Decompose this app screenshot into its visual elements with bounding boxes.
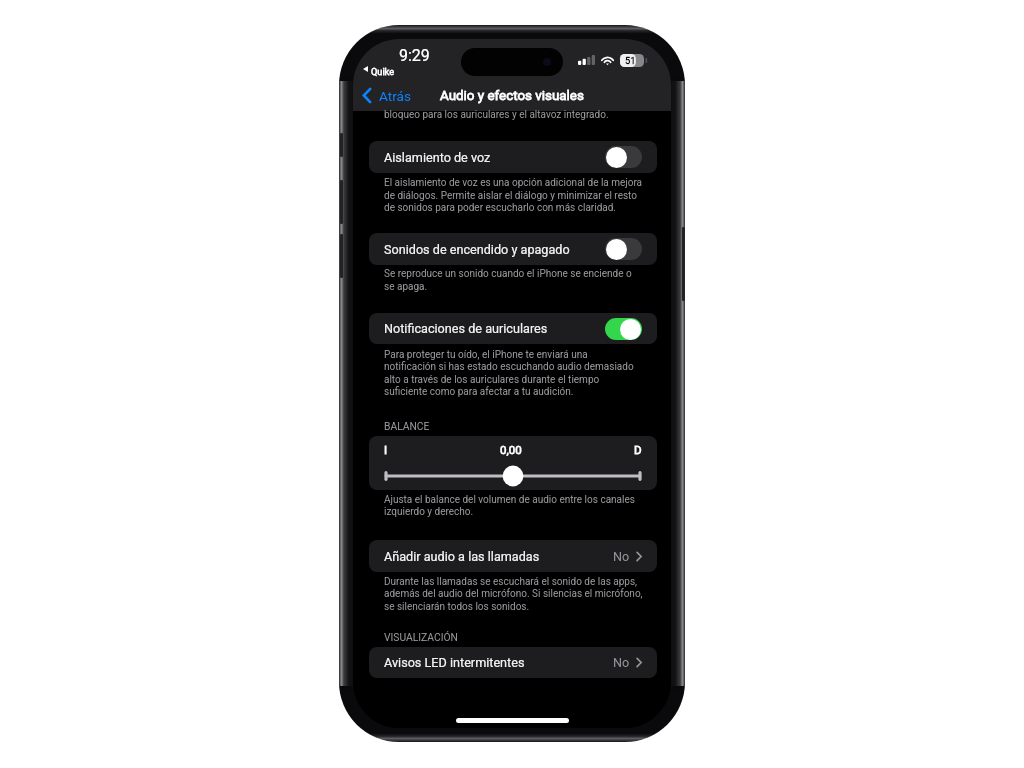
- staticText: VISUALIZACIÓN: [384, 631, 458, 643]
- staticText: Quike: [371, 66, 395, 77]
- staticText: Notificaciones de auriculares: [384, 321, 548, 336]
- staticText: suficiente como para afectar a tu audici…: [384, 386, 574, 398]
- staticText: bloqueo para los auriculares y el altavo…: [384, 109, 609, 121]
- staticText: Atrás: [379, 88, 411, 104]
- staticText: D: [634, 443, 642, 456]
- staticText: Aislamiento de voz: [384, 150, 491, 165]
- staticText: además del audio del micrófono. Si silen…: [384, 588, 643, 600]
- staticText: El aislamiento de voz es una opción adic…: [384, 177, 643, 189]
- button[interactable]: Aislamiento de voz: [369, 141, 657, 173]
- button[interactable]: Atrás: [356, 83, 420, 108]
- staticText: notificación si has estado escuchando au…: [384, 361, 634, 373]
- staticText: Sonidos de encendido y apagado: [384, 242, 570, 257]
- staticText: Añadir audio a las llamadas: [384, 549, 540, 564]
- button[interactable]: Desactivado: [605, 146, 642, 168]
- staticText: No: [613, 655, 630, 670]
- button[interactable]: Desactivado: [605, 238, 642, 260]
- staticText: 0,00: [500, 443, 522, 456]
- staticText: Audio y efectos visuales: [440, 88, 584, 104]
- staticText: Para proteger tu oído, el iPhone te envi…: [384, 349, 588, 361]
- button[interactable]: Sonidos de encendido y apagado: [369, 233, 657, 265]
- staticText: BALANCE: [384, 420, 430, 432]
- button[interactable]: Notificaciones de auriculares: [369, 313, 657, 344]
- staticText: de diálogos. Permite aislar el diálogo y…: [384, 190, 637, 202]
- staticText: Durante las llamadas se escuchará el son…: [384, 576, 638, 588]
- button[interactable]: Avisos LED intermitentes: [369, 647, 657, 678]
- button[interactable]: I: [369, 436, 657, 490]
- staticText: Avisos LED intermitentes: [384, 655, 525, 670]
- staticText: se silenciarán todos los sonidos.: [384, 601, 530, 613]
- button[interactable]: Balance: [384, 466, 642, 486]
- staticText: izquierdo y derecho.: [384, 506, 474, 518]
- staticText: se apaga.: [384, 281, 428, 293]
- staticText: de sonidos para poder escucharlo con más…: [384, 202, 616, 214]
- staticText: No: [613, 549, 630, 564]
- staticText: alto a través de los auriculares durante…: [384, 374, 600, 386]
- staticText: 51: [625, 55, 636, 66]
- button[interactable]: Añadir audio a las llamadas: [369, 540, 657, 572]
- button[interactable]: Activado: [605, 318, 642, 340]
- staticText: I: [384, 443, 388, 456]
- staticText: 9:29: [399, 46, 430, 65]
- staticText: Se reproduce un sonido cuando el iPhone …: [384, 268, 632, 280]
- staticText: Ajusta el balance del volumen de audio e…: [384, 494, 635, 506]
